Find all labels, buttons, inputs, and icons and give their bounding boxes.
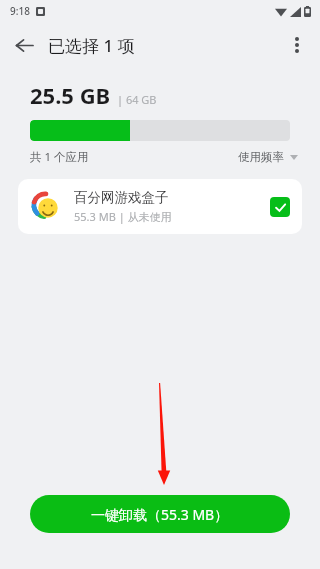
staticText: 已选择 1 项 xyxy=(48,34,135,57)
staticText: 9:18 xyxy=(10,4,30,18)
button[interactable]: 百分网游戏盒子 xyxy=(18,179,302,234)
button[interactable]: 已选中 xyxy=(270,197,290,217)
staticText: 25.5 GB xyxy=(30,80,111,110)
staticText: 55.3 MB | 从未使用 xyxy=(74,209,172,224)
button[interactable]: 更多选项 xyxy=(280,28,314,62)
staticText: 共 1 个应用 xyxy=(30,149,89,165)
staticText: 百分网游戏盒子 xyxy=(74,189,169,206)
button[interactable]: 使用频率 xyxy=(238,150,298,164)
staticText: 一键卸载（55.3 MB） xyxy=(91,505,229,524)
staticText: 使用频率 xyxy=(238,150,284,164)
staticText: | 64 GB xyxy=(117,92,157,107)
button[interactable]: 一键卸载（55.3 MB） xyxy=(30,495,290,533)
button[interactable]: 返回 xyxy=(8,29,40,61)
